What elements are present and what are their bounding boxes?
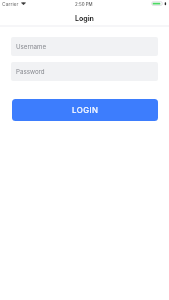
- button[interactable]: Username: [11, 37, 158, 56]
- staticText: Carrier: [2, 1, 19, 7]
- button[interactable]: LOGIN: [12, 99, 158, 121]
- staticText: Login: [75, 14, 94, 22]
- button[interactable]: Password: [11, 62, 158, 81]
- staticText: Password: [16, 68, 45, 76]
- other: Battery full: [151, 1, 167, 6]
- staticText: LOGIN: [72, 105, 99, 115]
- staticText: 2:50 PM: [75, 2, 93, 7]
- other: Wi-Fi: [21, 2, 26, 5]
- staticText: Username: [16, 43, 47, 51]
